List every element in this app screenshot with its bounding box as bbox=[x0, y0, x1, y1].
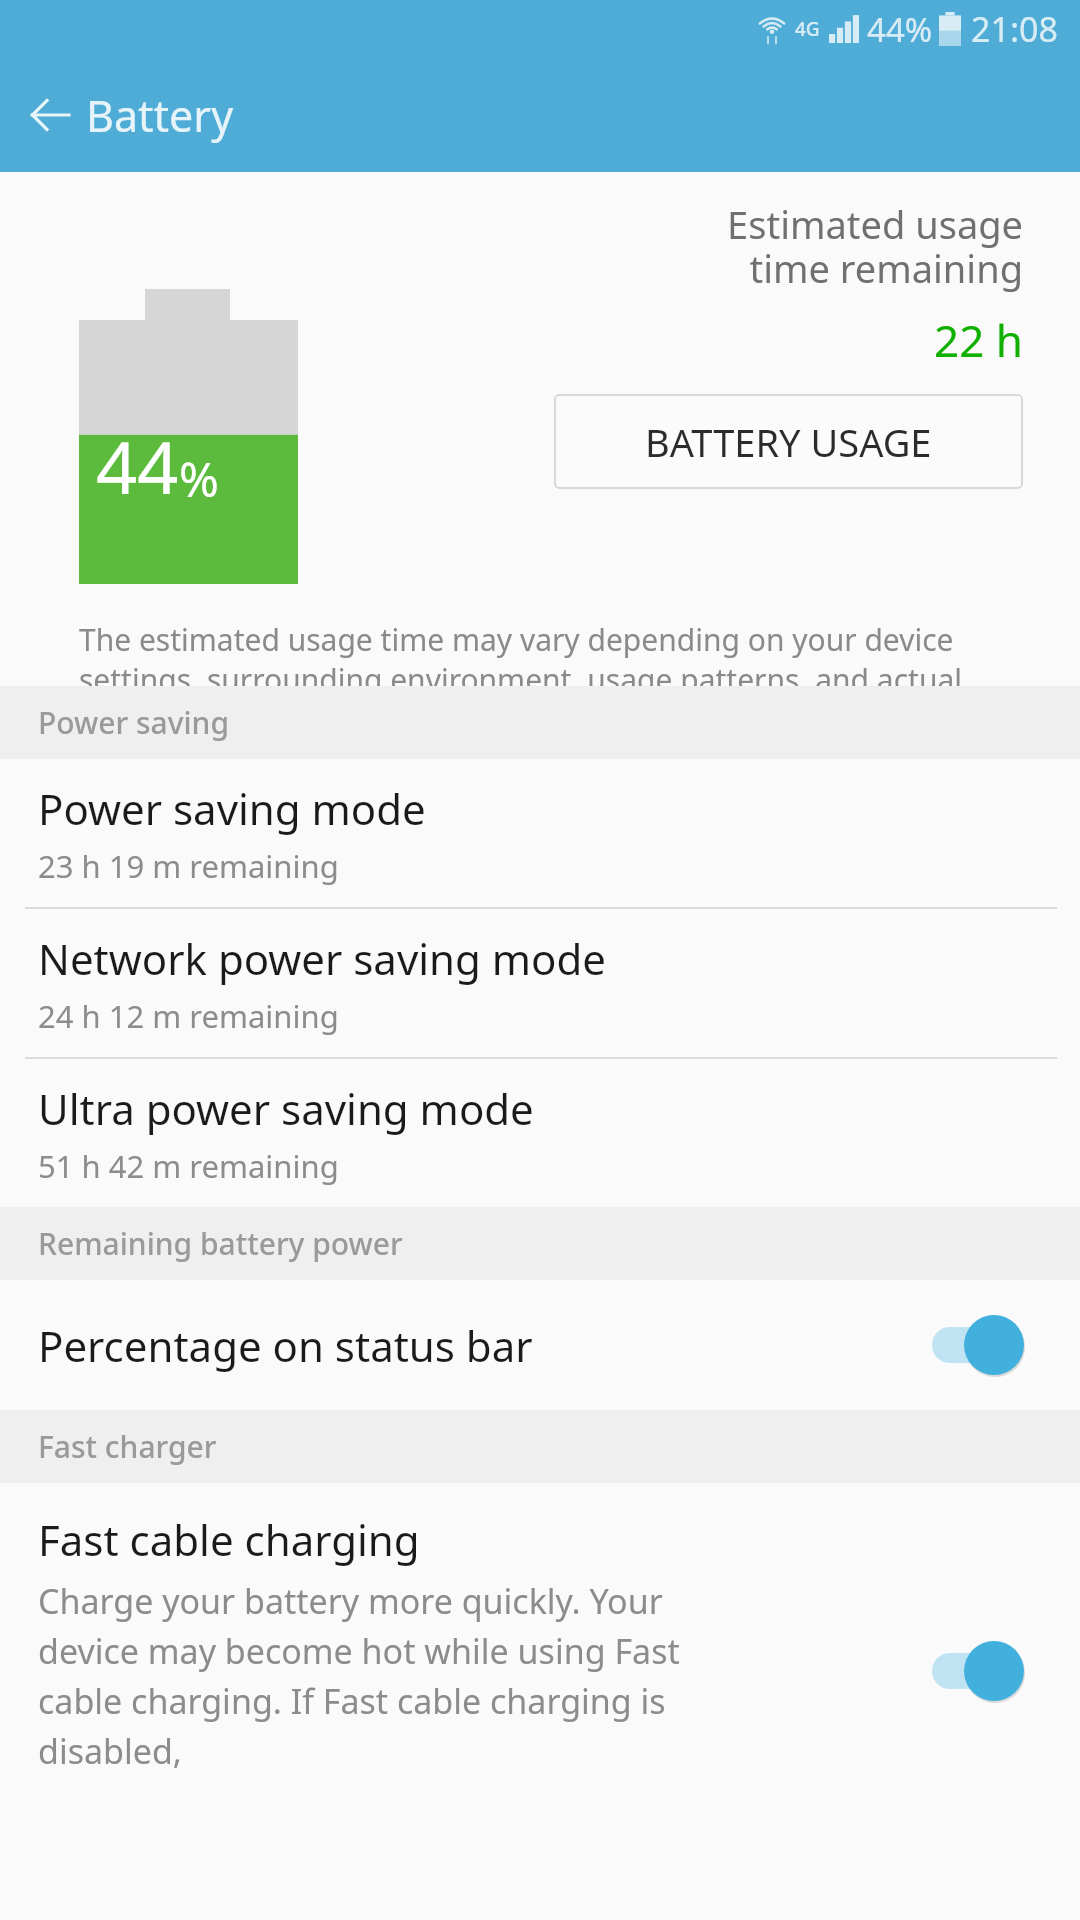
staticText: Remaining battery power bbox=[38, 1223, 403, 1264]
staticText: Fast charger bbox=[38, 1426, 217, 1467]
button[interactable]: Ultra power saving mode bbox=[0, 1059, 1080, 1207]
staticText: Estimated usage time remaining bbox=[727, 198, 1023, 294]
button[interactable]: Percentage on status bar bbox=[0, 1280, 1080, 1410]
button[interactable]: Power saving mode bbox=[0, 759, 1080, 907]
staticText: Network power saving mode bbox=[38, 930, 607, 987]
button[interactable]: Network power saving mode bbox=[0, 909, 1080, 1057]
staticText: BATTERY USAGE bbox=[645, 416, 932, 468]
staticText: The estimated usage time may vary depend… bbox=[79, 619, 1009, 740]
staticText: % bbox=[179, 446, 219, 511]
button[interactable]: Toggle bbox=[932, 1640, 1024, 1702]
button[interactable]: Fast cable charging bbox=[0, 1483, 1080, 1783]
staticText: Power saving mode bbox=[38, 780, 426, 837]
staticText: Ultra power saving mode bbox=[38, 1080, 534, 1137]
staticText: Charge your battery more quickly. Your d… bbox=[38, 1578, 758, 1774]
staticText: 51 h 42 m remaining bbox=[38, 1145, 339, 1187]
staticText: 22 h bbox=[934, 310, 1023, 370]
staticText: 44 bbox=[96, 417, 179, 515]
staticText: 21:08 bbox=[971, 6, 1058, 52]
button[interactable]: Back bbox=[22, 87, 78, 143]
staticText: 23 h 19 m remaining bbox=[38, 845, 339, 887]
button[interactable]: BATTERY USAGE bbox=[554, 394, 1023, 489]
staticText: Percentage on status bar bbox=[38, 1317, 932, 1374]
button[interactable]: Toggle bbox=[932, 1314, 1024, 1376]
staticText: Power saving bbox=[38, 702, 230, 743]
staticText: Fast cable charging bbox=[38, 1511, 420, 1568]
staticText: 24 h 12 m remaining bbox=[38, 995, 339, 1037]
staticText: 4G bbox=[795, 16, 820, 42]
staticText: Battery bbox=[86, 86, 234, 145]
staticText: 44% bbox=[867, 7, 933, 52]
